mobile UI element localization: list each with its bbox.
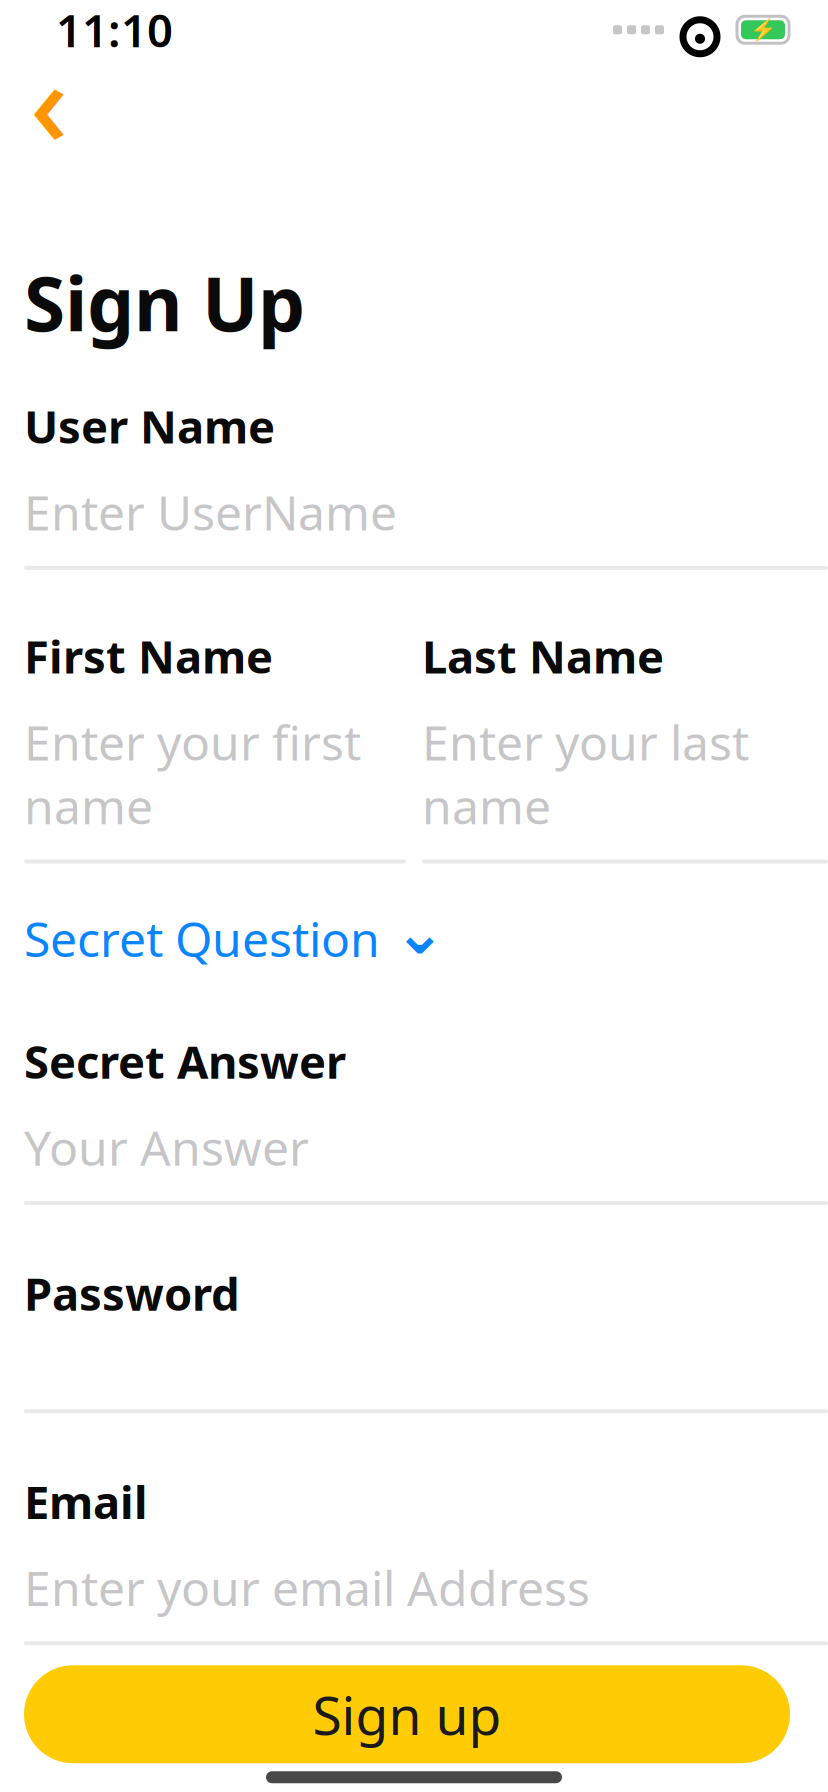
button[interactable]: Back xyxy=(6,67,92,153)
staticText: Secret Answer xyxy=(24,1031,346,1091)
staticText: 11:10 xyxy=(56,0,173,60)
staticText: Password xyxy=(24,1263,240,1323)
staticText: ⚡ xyxy=(749,18,776,42)
button[interactable]: Secret Question xyxy=(0,883,469,993)
staticText: Email xyxy=(24,1471,148,1531)
staticText: Sign Up xyxy=(24,253,305,352)
staticText: Your Answer xyxy=(24,1115,309,1179)
staticText: Enter your first name xyxy=(24,710,361,838)
staticText: Last Name xyxy=(422,626,664,686)
staticText: Enter your email Address xyxy=(24,1555,590,1619)
staticText: ⌄ xyxy=(394,897,445,967)
staticText: ‹ xyxy=(30,23,68,179)
staticText: Sign up xyxy=(312,1679,501,1750)
staticText: Enter your last name xyxy=(422,710,749,838)
staticText: User Name xyxy=(24,396,275,456)
staticText: Secret Question xyxy=(24,906,380,970)
staticText: First Name xyxy=(24,626,273,686)
button[interactable]: Sign up xyxy=(24,1665,790,1763)
staticText: Enter UserName xyxy=(24,480,397,544)
